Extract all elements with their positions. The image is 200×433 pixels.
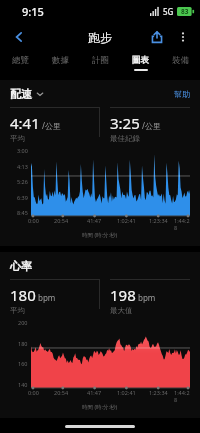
button[interactable]: 數據: [40, 52, 80, 74]
staticText: 跑步: [88, 30, 112, 45]
staticText: 1:02:41: [117, 389, 136, 396]
staticText: 幫助: [174, 89, 190, 99]
staticText: 200: [18, 319, 28, 326]
staticText: 5:26: [17, 178, 28, 185]
staticText: bpm: [38, 292, 56, 303]
staticText: 20:54: [54, 217, 69, 224]
button[interactable]: 配速: [10, 87, 44, 101]
staticText: 最大值: [110, 306, 133, 315]
staticText: 平均: [10, 306, 25, 315]
staticText: 4:13: [17, 163, 28, 170]
staticText: 最佳紀錄: [110, 134, 140, 143]
staticText: 1:44:28: [174, 217, 190, 231]
staticText: 180: [18, 340, 28, 347]
staticText: 1:02:41: [117, 217, 136, 224]
button[interactable]: Share: [144, 24, 170, 50]
button[interactable]: 心率: [10, 259, 32, 273]
staticText: 1:44:28: [174, 389, 190, 403]
staticText: 140: [18, 381, 28, 388]
staticText: 裝備: [172, 55, 189, 66]
staticText: 6:39: [17, 194, 28, 201]
staticText: 8:45: [17, 209, 28, 216]
staticText: 配速: [10, 87, 32, 101]
button[interactable]: 圖表: [120, 52, 160, 74]
staticText: bpm: [138, 292, 156, 303]
staticText: 心率: [10, 259, 32, 273]
staticText: 5G: [163, 6, 174, 17]
staticText: /公里: [142, 120, 161, 131]
button[interactable]: 幫助: [174, 89, 190, 99]
staticText: 計圈: [92, 55, 109, 66]
staticText: 3:00: [17, 147, 28, 154]
staticText: 3:25: [110, 113, 140, 133]
staticText: 圖表: [132, 55, 149, 66]
staticText: 數據: [52, 55, 69, 66]
button[interactable]: 計圈: [80, 52, 120, 74]
staticText: 0:00: [28, 389, 39, 396]
staticText: 4:41: [10, 113, 40, 133]
staticText: 83: [181, 7, 189, 16]
staticText: 20:54: [54, 389, 69, 396]
staticText: 平均: [10, 134, 25, 143]
staticText: 0:00: [28, 217, 39, 224]
button[interactable]: 總覽: [0, 52, 40, 74]
button[interactable]: Back: [6, 24, 32, 50]
staticText: 總覽: [12, 55, 29, 66]
button[interactable]: 裝備: [160, 52, 200, 74]
staticText: 41:47: [87, 389, 102, 396]
staticText: 9:15: [22, 4, 44, 19]
staticText: /公里: [42, 120, 61, 131]
staticText: 41:47: [87, 217, 102, 224]
staticText: 時間 (時:分:秒): [82, 231, 118, 239]
staticText: 198: [110, 285, 136, 305]
staticText: 160: [18, 360, 28, 367]
button[interactable]: More options: [170, 24, 196, 50]
staticText: 180: [10, 285, 36, 305]
staticText: 1:23:34: [149, 217, 168, 224]
staticText: 時間 (時:分:秒): [82, 403, 118, 411]
staticText: 1:23:34: [149, 389, 168, 396]
